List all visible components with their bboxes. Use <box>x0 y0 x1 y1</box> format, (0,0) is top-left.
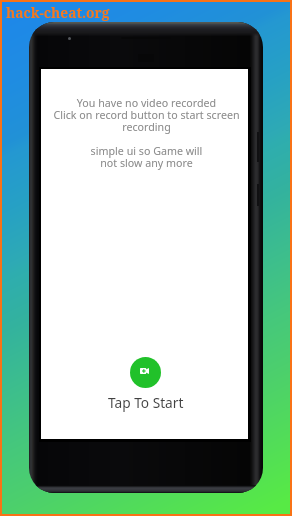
button[interactable]: Start recording <box>130 357 161 388</box>
staticText: You have no video recorded Click on reco… <box>51 96 242 171</box>
staticText: hack-cheat.org <box>6 3 110 22</box>
button[interactable]: Tap To Start <box>108 393 184 412</box>
